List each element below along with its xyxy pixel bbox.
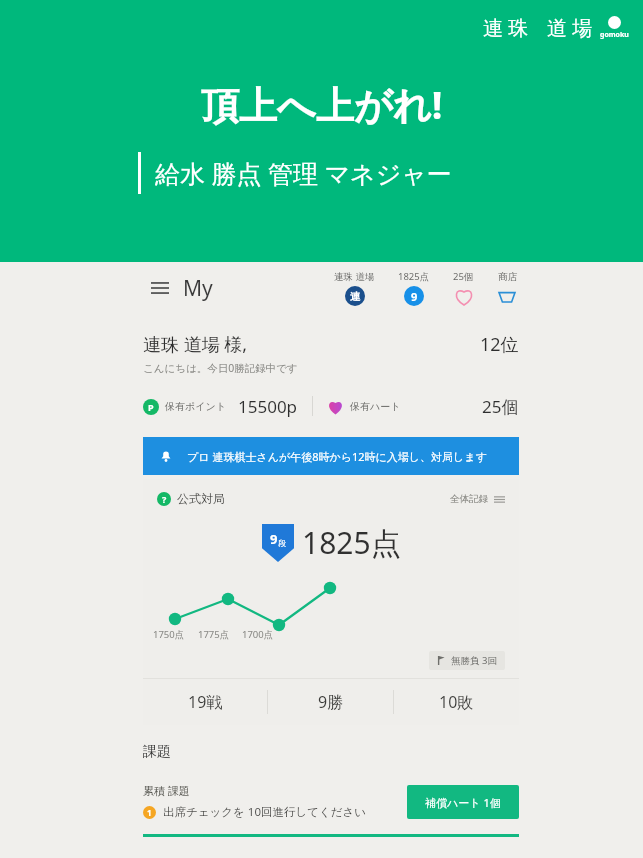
staticText: 15500p [238, 395, 298, 418]
staticText: 無勝負 3回 [451, 654, 497, 667]
staticText: 連珠 道場 様, [143, 332, 248, 357]
button[interactable]: 1825点 [396, 270, 432, 306]
button[interactable]: 連珠 道場 様, [143, 332, 519, 375]
staticText: 12位 [480, 332, 519, 357]
staticText: 連 珠 [483, 14, 529, 41]
staticText: 25個 [453, 270, 474, 283]
staticText: 商店 [498, 271, 517, 283]
staticText: 補償ハート 1個 [425, 795, 501, 810]
staticText: 累積 課題 [143, 783, 190, 798]
button[interactable]: 連珠 道場 [332, 270, 377, 306]
button[interactable]: 全体記録 [450, 493, 505, 505]
button[interactable]: 連 珠 [483, 14, 629, 41]
staticText: 19戦 [188, 691, 223, 713]
button[interactable]: 25個 [451, 270, 476, 306]
button[interactable]: プロ 連珠棋士さんが午後8時から12時に入場し、対局します [143, 437, 519, 475]
staticText: 10敗 [439, 691, 474, 713]
staticText: 保有ポイント [165, 400, 226, 413]
staticText: 25個 [482, 395, 519, 418]
button[interactable]: P [143, 395, 298, 418]
staticText: 9 [411, 289, 418, 304]
staticText: P [148, 401, 154, 413]
staticText: 段 [278, 538, 286, 548]
staticText: 9勝 [318, 691, 344, 713]
staticText: 1700点 [242, 628, 274, 641]
button[interactable]: 保有ハート [327, 395, 519, 418]
staticText: gomoku [600, 30, 629, 40]
staticText: 9 [270, 530, 278, 548]
staticText: 頂上へ上がれ! [201, 78, 443, 130]
button[interactable]: 10敗 [394, 679, 519, 725]
staticText: 道 場 [547, 14, 593, 41]
staticText: 全体記録 [450, 493, 488, 505]
staticText: 連 [350, 290, 360, 303]
button[interactable]: 商店 [495, 271, 519, 306]
staticText: ? [162, 493, 167, 505]
staticText: こんにちは。今日0勝記録中です [143, 361, 298, 375]
staticText: 保有ハート [350, 400, 401, 413]
staticText: 1775点 [198, 628, 230, 641]
staticText: 給水 勝点 管理 マネジャー [155, 156, 452, 190]
staticText: 1825点 [398, 270, 430, 283]
staticText: My [183, 274, 213, 303]
staticText: プロ 連珠棋士さんが午後8時から12時に入場し、対局します [187, 449, 487, 464]
staticText: 1825点 [302, 522, 401, 563]
staticText: 1750点 [153, 628, 185, 641]
staticText: 出席チェックを 10回進行してください [163, 804, 367, 820]
staticText: 連珠 道場 [334, 270, 375, 283]
staticText: 課題 [143, 743, 171, 761]
button[interactable]: 補償ハート 1個 [407, 785, 519, 819]
button[interactable]: 9勝 [268, 679, 393, 725]
button[interactable]: 19戦 [143, 679, 267, 725]
staticText: 公式対局 [177, 491, 225, 506]
button[interactable]: ? [157, 491, 225, 506]
button[interactable]: Menu [143, 271, 177, 305]
staticText: 1 [147, 807, 152, 818]
